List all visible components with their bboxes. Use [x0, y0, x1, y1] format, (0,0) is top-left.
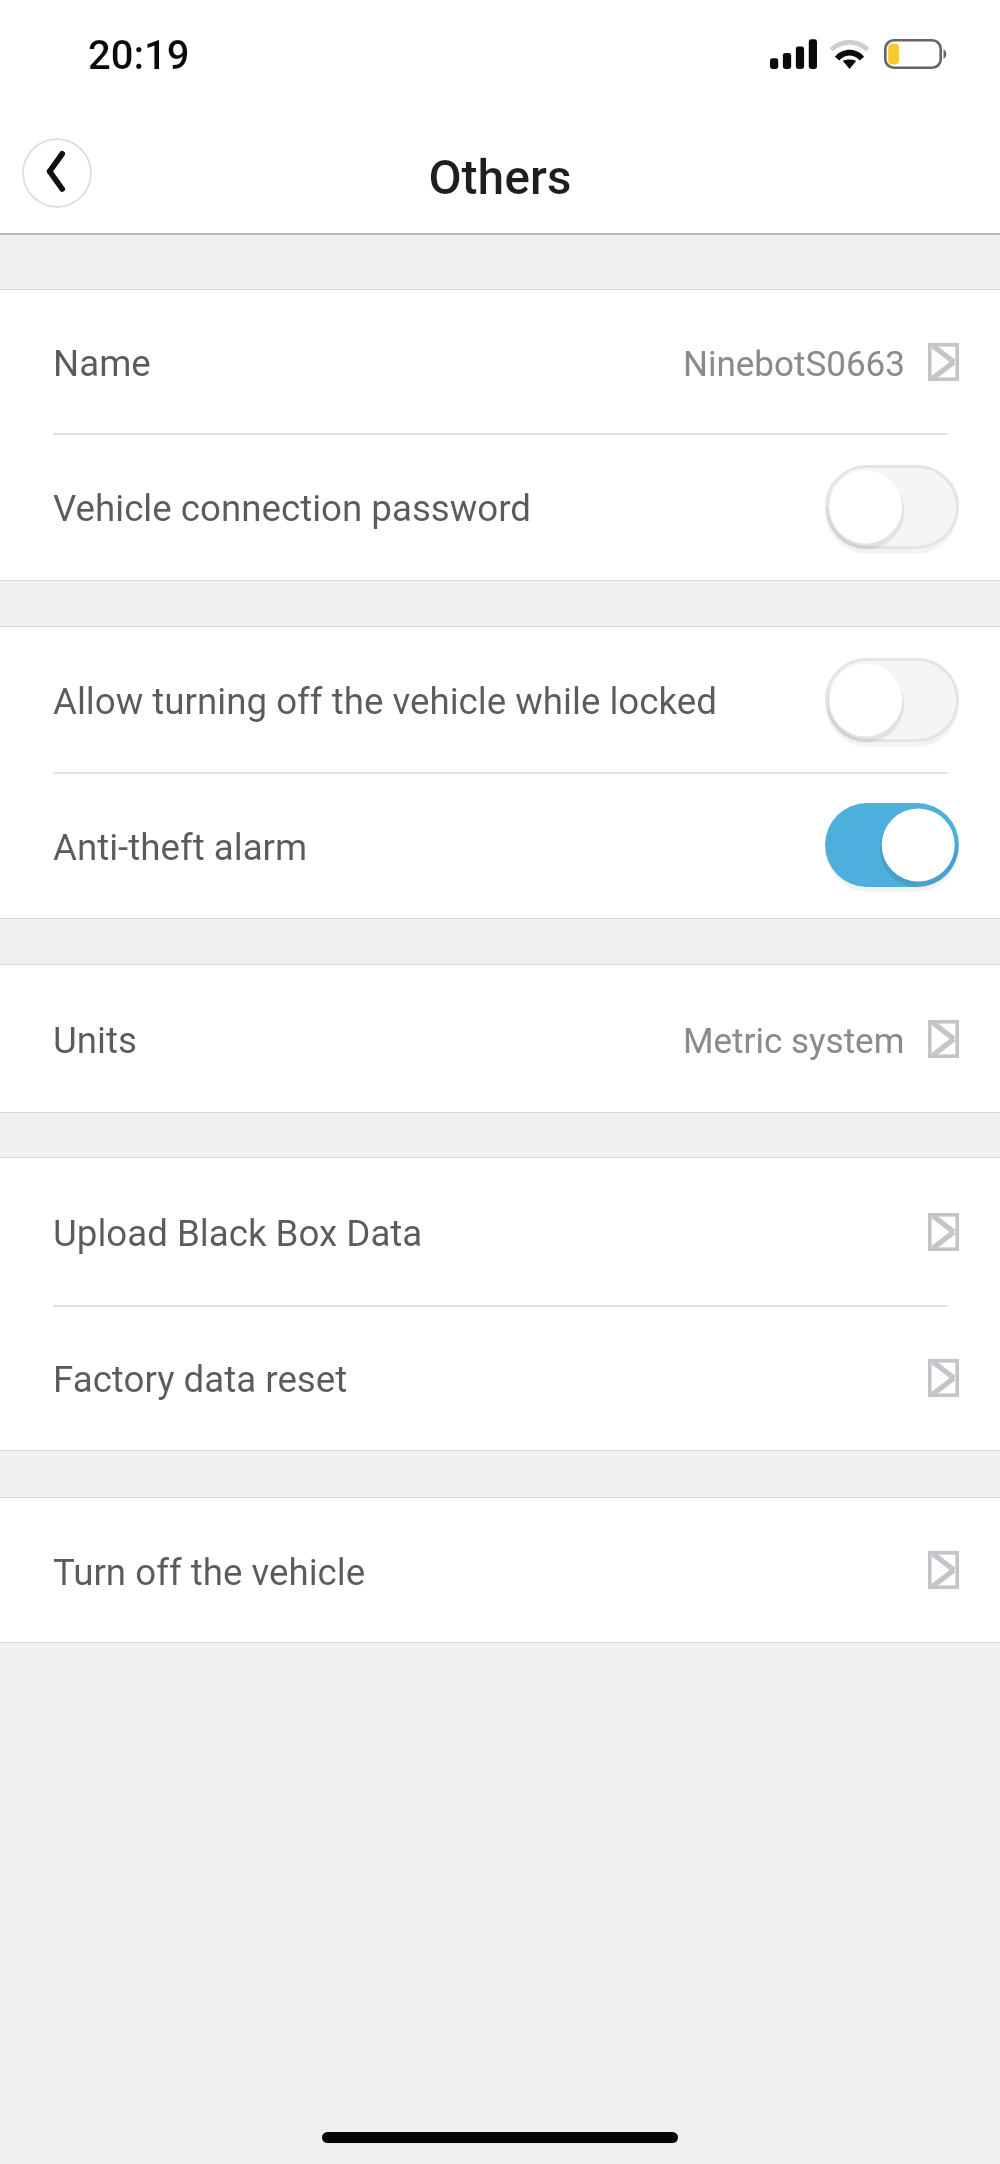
staticText: Factory data reset — [53, 1358, 348, 1401]
button[interactable]: Anti-theft alarm, on — [825, 803, 959, 887]
staticText: 20:19 — [88, 32, 190, 79]
button[interactable]: Anti-theft alarm — [0, 772, 1000, 918]
staticText: NinebotS0663 — [683, 344, 905, 385]
staticText: Upload Black Box Data — [53, 1212, 423, 1255]
button[interactable]: Allow turning off the vehicle while lock… — [0, 627, 1000, 772]
staticText: Allow turning off the vehicle while lock… — [53, 680, 717, 723]
staticText: Name — [53, 342, 151, 385]
button[interactable]: Vehicle connection password — [0, 433, 1000, 580]
staticText: Anti-theft alarm — [53, 826, 308, 869]
button[interactable]: Factory data reset — [0, 1305, 1000, 1450]
button[interactable]: Allow turning off the vehicle while lock… — [825, 658, 959, 742]
button[interactable]: Back — [22, 138, 92, 208]
staticText: Others — [428, 149, 572, 205]
staticText: Vehicle connection password — [53, 487, 532, 530]
button[interactable]: Name — [0, 290, 1000, 433]
staticText: Turn off the vehicle — [53, 1551, 366, 1594]
staticText: Metric system — [683, 1021, 905, 1062]
button[interactable]: Turn off the vehicle — [0, 1498, 1000, 1642]
button[interactable]: Units — [0, 965, 1000, 1112]
button[interactable]: Upload Black Box Data — [0, 1158, 1000, 1305]
staticText: Units — [53, 1019, 137, 1062]
button[interactable]: Vehicle connection password, off — [825, 465, 959, 549]
